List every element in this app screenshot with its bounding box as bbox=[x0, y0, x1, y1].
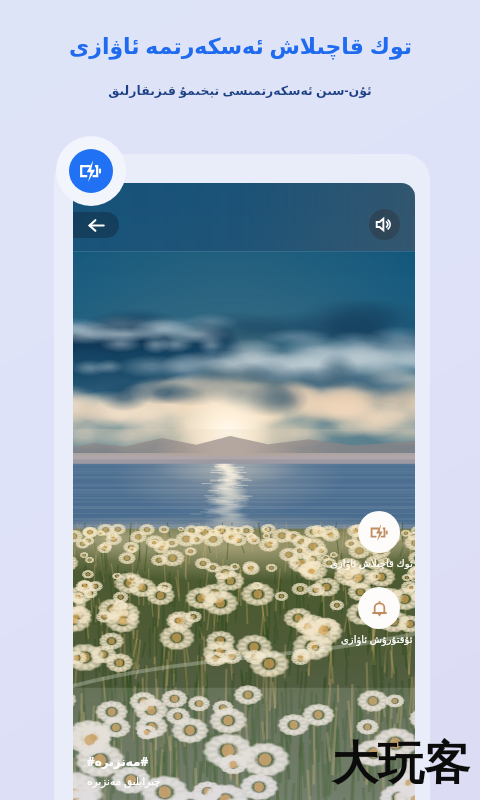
button[interactable]: Sound bbox=[369, 209, 400, 240]
staticText: توك قاچىلاش ئەسكەرتمە ئاۋازى bbox=[69, 30, 412, 60]
staticText: توك قاچىلاش ئاۋازى bbox=[330, 556, 413, 570]
button[interactable]: Charging bbox=[69, 149, 113, 193]
button[interactable]: Notification sound bbox=[358, 587, 400, 629]
staticText: #مەنزىرە# bbox=[87, 753, 149, 769]
button[interactable]: Charging sound bbox=[358, 511, 400, 553]
staticText: ئۇقتۇرۇش ئاۋازى bbox=[341, 632, 413, 646]
staticText: چىرايلىق مەنزىرە bbox=[87, 774, 161, 788]
staticText: 大玩客 bbox=[332, 735, 470, 793]
staticText: ئۇن-سىن ئەسكەرتمىسى تېخىمۇ قىزىقارلىق bbox=[108, 82, 372, 99]
button[interactable]: Back bbox=[73, 212, 119, 238]
